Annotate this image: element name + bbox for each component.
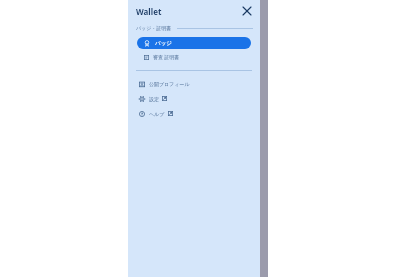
button[interactable]: 公開プロフィール [137,78,251,89]
button[interactable]: バッジ [137,37,251,49]
staticText: ヘルプ [149,111,165,117]
staticText: 設定 [149,96,159,102]
button[interactable]: 設定 [137,93,251,104]
staticText: 審査 証明書 [153,54,180,61]
staticText: 公開プロフィール [149,81,190,87]
staticText: Wallet [136,6,162,17]
button[interactable]: 審査 証明書 [137,52,251,63]
button[interactable]: Close [240,4,254,18]
button[interactable]: ヘルプ [137,108,251,119]
staticText: バッジ [155,40,172,47]
staticText: バッジ・証明書 [136,25,172,31]
